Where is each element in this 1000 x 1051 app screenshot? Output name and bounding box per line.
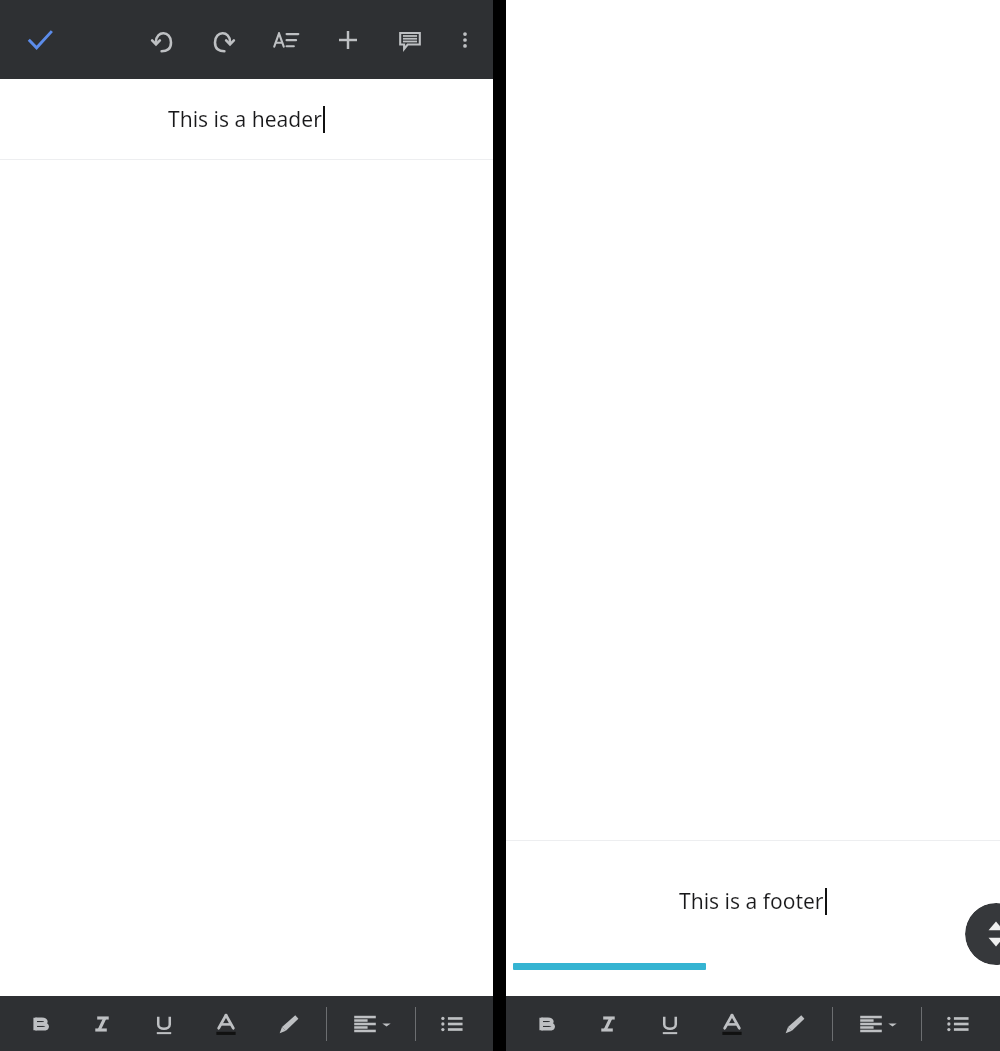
button[interactable]: Bold: [522, 996, 570, 1051]
button[interactable]: Text colour: [202, 996, 250, 1051]
button[interactable]: Redo: [193, 8, 255, 72]
button[interactable]: Highlight: [264, 996, 312, 1051]
button[interactable]: More options: [441, 8, 489, 72]
staticText: This is a footer: [679, 887, 824, 916]
button[interactable]: Insert: [317, 8, 379, 72]
button[interactable]: Formatting: [255, 8, 317, 72]
button[interactable]: Bulleted list: [428, 996, 476, 1051]
button[interactable]: Text colour: [708, 996, 756, 1051]
button[interactable]: Highlight: [770, 996, 818, 1051]
button[interactable]: Bulleted list: [934, 996, 982, 1051]
button[interactable]: Bold: [16, 996, 64, 1051]
button[interactable]: Done: [8, 8, 72, 72]
button[interactable]: Underline: [646, 996, 694, 1051]
button[interactable]: Undo: [131, 8, 193, 72]
button[interactable]: Underline: [140, 996, 188, 1051]
button[interactable]: Alignment: [845, 996, 911, 1051]
button[interactable]: Alignment: [339, 996, 405, 1051]
button[interactable]: Comments: [379, 8, 441, 72]
button[interactable]: Italic: [78, 996, 126, 1051]
staticText: This is a header: [168, 105, 322, 134]
button[interactable]: Scroll: [965, 903, 1000, 965]
button[interactable]: Italic: [584, 996, 632, 1051]
